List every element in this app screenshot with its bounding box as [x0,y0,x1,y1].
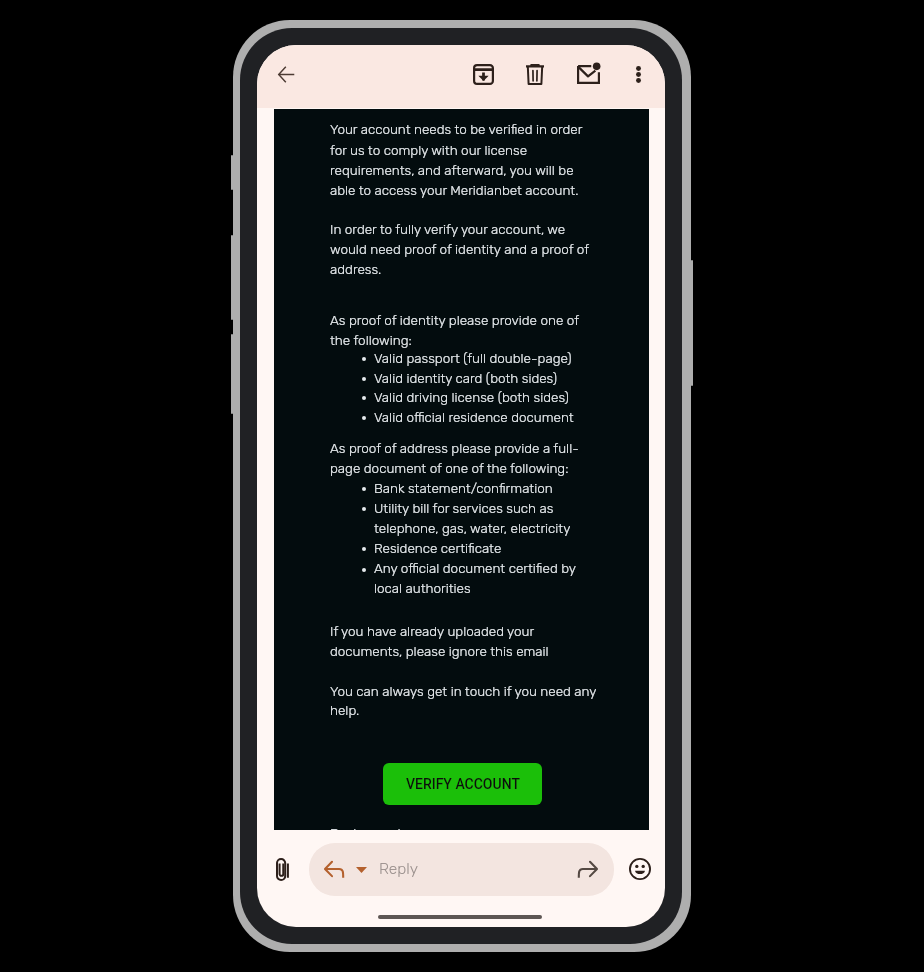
button[interactable]: Delete [513,52,557,96]
staticText: Your account needs to be verified in ord… [330,118,583,138]
staticText: for us to comply with our license [330,139,528,159]
button[interactable]: Insert emoji [618,847,662,891]
staticText: the following: [330,329,412,349]
staticText: As proof of address please provide a ful… [330,437,579,457]
staticText: Valid identity card (both sides) [374,367,557,387]
staticText: Utility bill for services such as [374,497,554,517]
staticText: Bank statement/confirmation [374,477,553,497]
staticText: telephone, gas, water, electricity [374,517,571,537]
staticText: would need proof of identity and a proof… [330,238,590,258]
staticText: VERIFY ACCOUNT [406,776,520,792]
staticText: Valid official residence document [374,406,574,426]
button[interactable]: More options [616,52,660,96]
staticText: You can always get in touch if you need … [330,680,597,700]
staticText: address. [330,258,382,278]
staticText: As proof of identity please provide one … [330,309,580,329]
staticText: Any official document certified by [374,557,576,577]
staticText: requirements, and afterward, you will be [330,159,574,179]
staticText: Valid driving license (both sides) [374,386,569,406]
button[interactable]: Back [264,52,308,96]
staticText: documents, please ignore this email [330,640,549,660]
button[interactable]: Mark as unread [566,52,610,96]
staticText: able to access your Meridianbet account. [330,179,579,199]
button[interactable]: Archive [461,52,505,96]
staticText: local authorities [374,577,471,597]
staticText: If you have already uploaded your [330,620,535,640]
staticText: page document of one of the following: [330,457,569,477]
staticText: help. [330,699,360,719]
staticText: Reply [379,860,419,878]
staticText: Best regards, [330,822,411,830]
staticText: In order to fully verify your account, w… [330,218,566,238]
staticText: Residence certificate [374,537,502,557]
button[interactable]: Attach file [260,847,304,891]
button[interactable]: Reply [309,843,614,896]
staticText: Valid passport (full double-page) [374,347,572,367]
button[interactable]: VERIFY ACCOUNT [383,763,542,805]
